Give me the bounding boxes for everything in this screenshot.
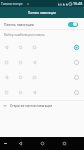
staticText: Выбор комбинации клавиш xyxy=(4,33,45,37)
staticText: 16:48 xyxy=(73,1,83,6)
staticText: Открытие панели навигации xyxy=(10,104,53,108)
button[interactable]: Назад xyxy=(13,137,27,150)
staticText: Панель навигации xyxy=(4,22,34,26)
button[interactable]: Выбрать вариант xyxy=(0,70,84,85)
button[interactable]: Выбрать вариант xyxy=(72,43,81,52)
button[interactable]: Скрыть панель навигации xyxy=(2,140,9,147)
button[interactable]: Выбрать вариант xyxy=(0,40,84,55)
button[interactable]: Главный экран xyxy=(35,137,49,150)
button[interactable]: Последние приложения xyxy=(57,137,71,150)
button[interactable]: Выбрать вариант xyxy=(72,58,81,67)
staticText: Только экстре xyxy=(1,2,23,6)
button[interactable]: Выбрать вариант xyxy=(72,88,81,97)
button[interactable]: Выбрать вариант xyxy=(0,85,84,100)
button[interactable]: Выбрать вариант xyxy=(72,73,81,82)
button[interactable]: Открытие панели навигации xyxy=(0,101,84,111)
button[interactable]: Навигация включена xyxy=(68,20,78,28)
button[interactable]: Панель навигации xyxy=(0,18,84,29)
button[interactable]: Выбрать вариант xyxy=(0,55,84,70)
staticText: Панель навигации xyxy=(28,11,56,15)
